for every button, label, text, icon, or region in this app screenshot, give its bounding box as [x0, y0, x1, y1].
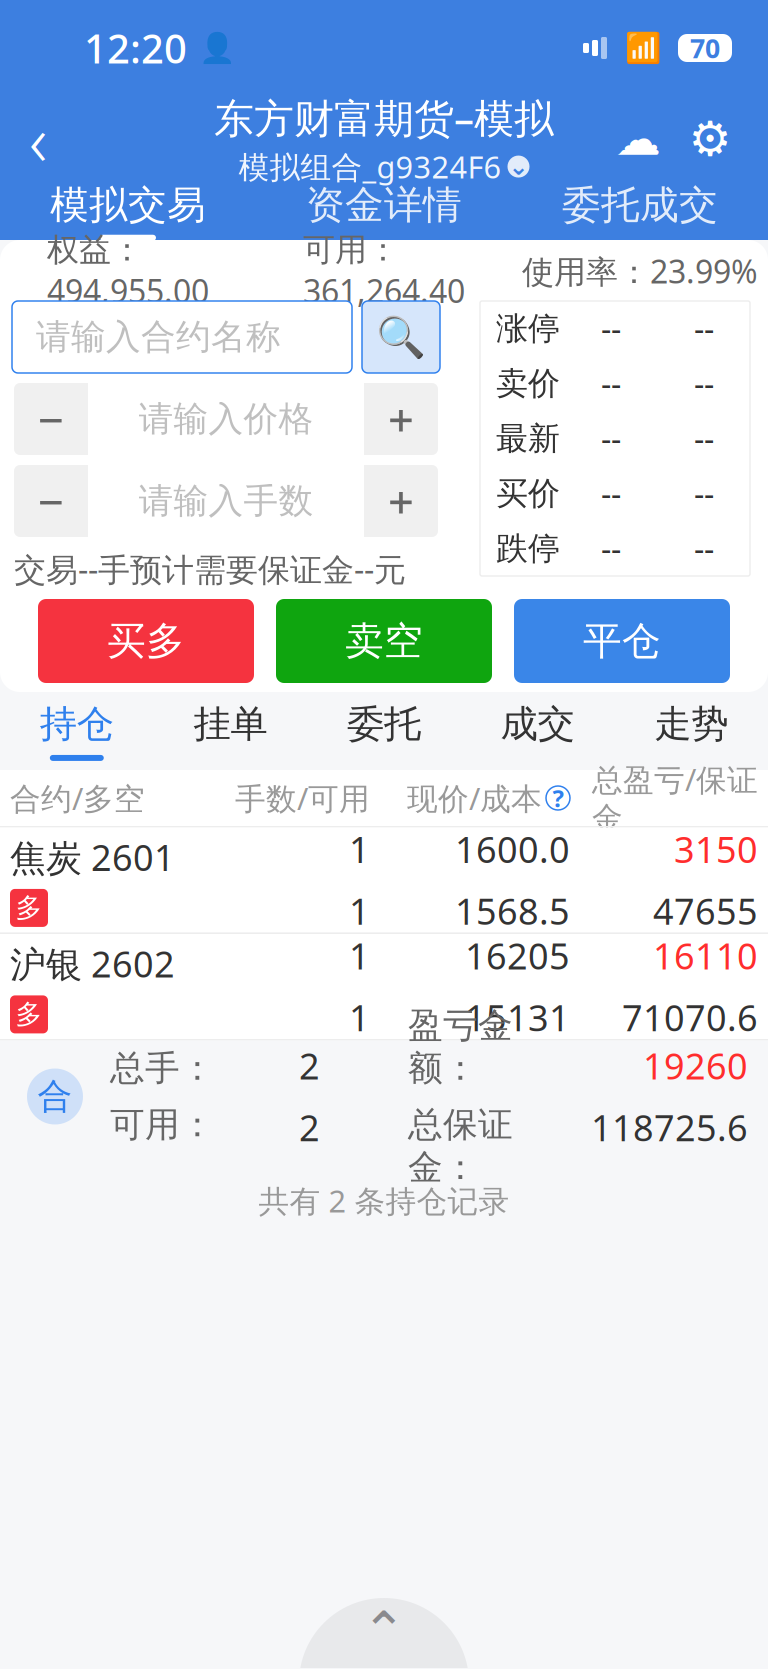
staticText: 卖价 — [496, 364, 560, 403]
button[interactable]: 平仓 — [514, 599, 730, 683]
staticText: 1 — [349, 932, 370, 979]
staticText: − — [38, 471, 64, 531]
staticText: 47655 — [653, 887, 758, 935]
staticText: 挂单 — [193, 701, 267, 747]
staticText: 委托 — [347, 701, 421, 747]
staticText: 71070.6 — [622, 993, 758, 1041]
button[interactable]: 减少 — [14, 383, 88, 455]
staticText: 现价/成本 — [407, 778, 542, 818]
staticText: -- — [694, 527, 714, 570]
staticText: 合约/多空 — [10, 778, 145, 818]
staticText: 🔍 — [376, 314, 426, 360]
staticText: -- — [694, 362, 714, 405]
button[interactable]: 增加 — [364, 465, 438, 537]
staticText: 可用： — [110, 1103, 215, 1146]
button[interactable]: 卖空 — [276, 599, 492, 683]
staticText: 2 — [299, 1042, 320, 1089]
staticText: 可用：361,264.40 — [303, 230, 465, 312]
button[interactable]: 买多 — [38, 599, 254, 683]
staticText: ☁ — [615, 113, 660, 165]
staticText: -- — [694, 307, 714, 350]
button[interactable]: 挂单 — [154, 692, 307, 770]
staticText: 使用率：23.99% — [522, 250, 758, 292]
staticText: 16110 — [653, 932, 758, 979]
button[interactable]: 增加 — [364, 383, 438, 455]
staticText: 最新 — [496, 419, 560, 458]
staticText: 15131 — [465, 993, 570, 1041]
staticText: -- — [601, 307, 621, 350]
staticText: + — [388, 471, 414, 531]
staticText: 总保证金： — [408, 1103, 513, 1189]
staticText: -- — [601, 417, 621, 460]
staticText: 70 — [690, 30, 720, 66]
staticText: -- — [694, 417, 714, 460]
staticText: 合 — [37, 1075, 72, 1118]
button[interactable]: 成交 — [461, 692, 614, 770]
staticText: 焦炭 2601 — [10, 833, 175, 881]
staticText: 买价 — [496, 474, 560, 513]
staticText: 118725.6 — [591, 1103, 748, 1151]
staticText: 1 — [349, 887, 370, 935]
staticText: -- — [601, 362, 621, 405]
button[interactable]: Settings — [674, 103, 746, 175]
staticText: 走势 — [654, 701, 728, 747]
staticText: 模拟组合_g9324F6 — [238, 146, 501, 187]
staticText: 1568.5 — [455, 887, 570, 935]
staticText: − — [38, 389, 64, 449]
staticText: 涨停 — [496, 309, 560, 348]
staticText: 权益：494,955.00 — [47, 230, 209, 312]
staticText: 1600.0 — [455, 825, 570, 873]
staticText: 多 — [15, 891, 42, 924]
staticText: 1 — [349, 993, 370, 1041]
staticText: -- — [601, 527, 621, 570]
staticText: 跌停 — [496, 529, 560, 568]
staticText: ⌄ — [508, 153, 528, 180]
button[interactable]: 模拟组合_g9324F6 — [238, 146, 529, 187]
staticText: 东方财富期货–模拟 — [214, 91, 554, 144]
staticText: 1 — [349, 825, 370, 873]
button[interactable]: 模拟交易 — [0, 182, 256, 240]
button[interactable]: Cloud — [602, 103, 674, 175]
staticText: 持仓 — [40, 701, 114, 747]
button[interactable]: 委托成交 — [512, 182, 768, 240]
button[interactable]: 沪银 2602 — [0, 934, 768, 1039]
staticText: 3150 — [674, 825, 758, 873]
staticText: 16205 — [465, 932, 570, 979]
staticText: 委托成交 — [562, 181, 718, 229]
staticText: 平仓 — [583, 617, 661, 665]
staticText: 卖空 — [345, 617, 423, 665]
button[interactable]: Back — [0, 101, 76, 177]
staticText: 📶 — [625, 31, 662, 65]
staticText: 交易--手预计需要保证金--元 — [14, 548, 406, 590]
button[interactable]: 走势 — [614, 692, 768, 770]
staticText: 请输入合约名称 — [36, 316, 281, 358]
staticText: 多 — [15, 998, 42, 1031]
button[interactable]: 资金详情 — [256, 182, 512, 240]
staticText: 买多 — [107, 617, 185, 665]
staticText: -- — [694, 472, 714, 515]
staticText: 沪银 2602 — [10, 940, 175, 987]
button[interactable]: 焦炭 2601 — [0, 827, 768, 932]
staticText: 总手： — [110, 1047, 215, 1089]
staticText: -- — [601, 472, 621, 515]
staticText: ? — [552, 782, 563, 814]
staticText: 请输入手数 — [138, 480, 313, 522]
staticText: 👤 — [199, 31, 236, 65]
staticText: 资金详情 — [306, 181, 462, 229]
button[interactable]: 委托 — [307, 692, 461, 770]
staticText: 请输入价格 — [138, 398, 313, 440]
staticText: 总盈亏/保证金 — [592, 759, 758, 837]
button[interactable]: 持仓 — [0, 692, 154, 770]
staticText: 12:20 — [84, 21, 187, 74]
staticText: ‹ — [29, 93, 47, 185]
staticText: ⌃ — [361, 1601, 406, 1661]
staticText: 共有 2 条持仓记录 — [258, 1180, 509, 1221]
staticText: 模拟交易 — [50, 181, 206, 229]
staticText: + — [388, 389, 414, 449]
staticText: 19260 — [643, 1042, 748, 1089]
button[interactable]: 展开 — [299, 1578, 469, 1668]
button[interactable]: 减少 — [14, 465, 88, 537]
staticText: ⚙ — [688, 112, 731, 166]
button[interactable]: 搜索 — [362, 301, 440, 373]
staticText: 盈亏金额： — [408, 1004, 513, 1089]
